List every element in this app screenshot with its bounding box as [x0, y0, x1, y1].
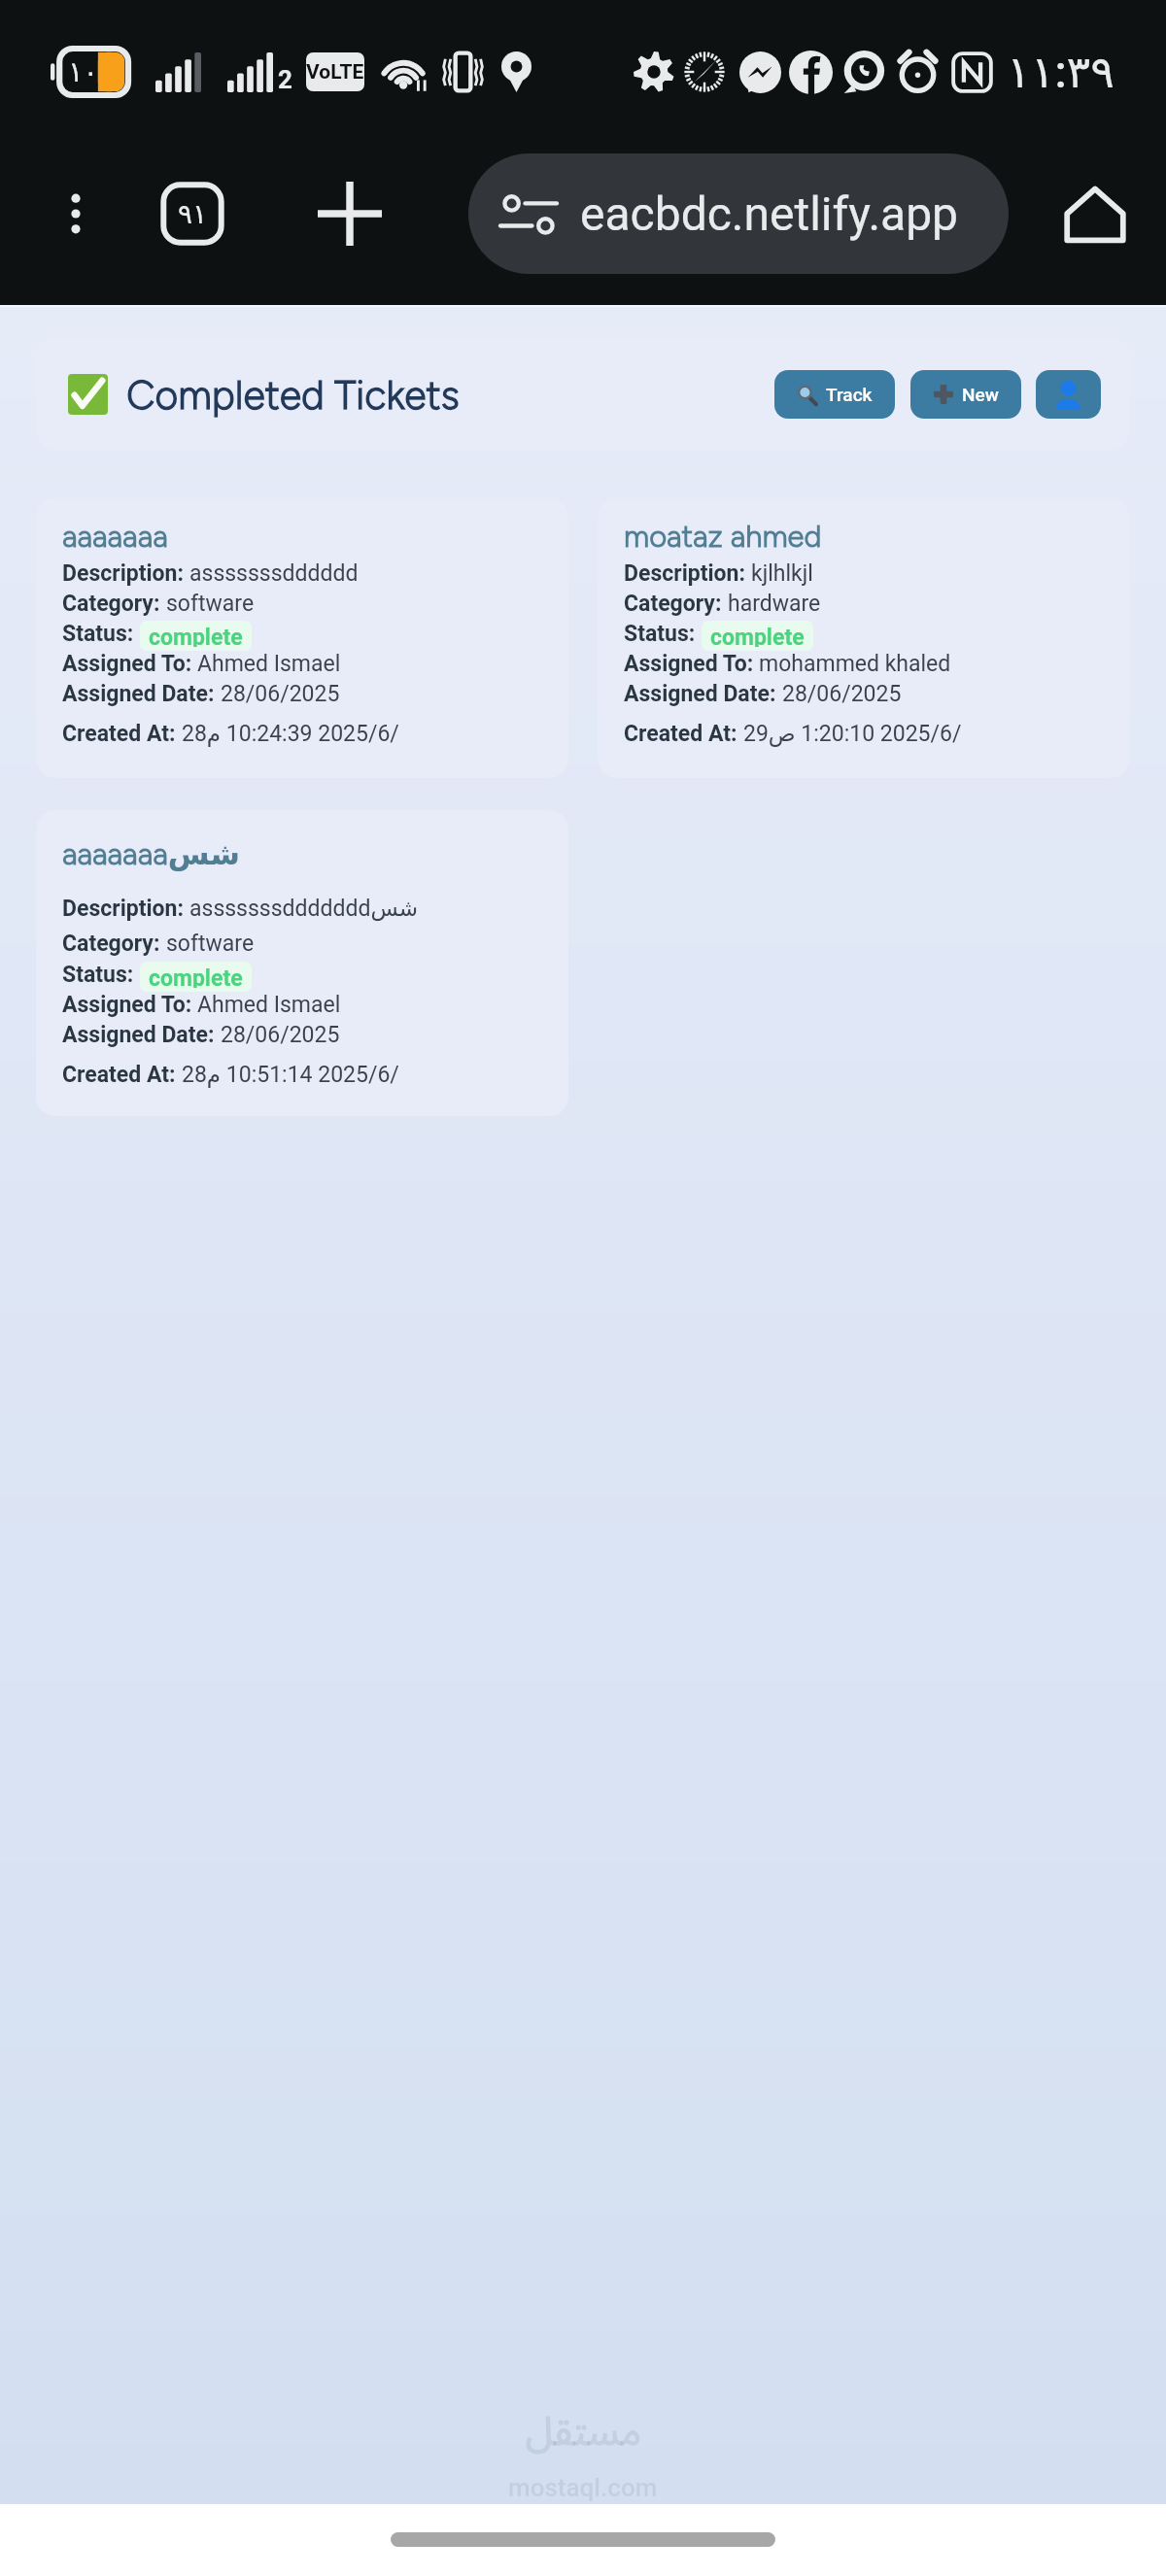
staticText: Assigned To:: [624, 651, 759, 677]
staticText: complete: [149, 966, 243, 988]
button[interactable]: More options: [35, 173, 117, 254]
staticText: Ahmed Ismael: [197, 992, 341, 1018]
staticText: Status:: [62, 962, 134, 988]
button[interactable]: aaaaaaa: [36, 498, 568, 778]
staticText: kjlhlkjl: [751, 560, 813, 587]
staticText: asssssssdddddddشس: [189, 896, 418, 922]
staticText: mostaql.com: [508, 2473, 658, 2502]
staticText: Status:: [62, 621, 134, 647]
button[interactable]: Track: [774, 370, 895, 419]
staticText: asssssssdddddd: [189, 560, 359, 587]
staticText: 29ص‎ 1:20:10 2025/6/: [743, 721, 962, 747]
staticText: New: [962, 384, 999, 405]
button[interactable]: eacbdc.netlify.app: [468, 153, 1009, 274]
staticText: Created At:: [62, 1062, 182, 1088]
staticText: VoLTE: [306, 60, 364, 85]
staticText: 28/06/2025: [782, 681, 902, 707]
staticText: mohammed khaled: [759, 651, 951, 677]
staticText: مستقل: [526, 2391, 641, 2473]
staticText: Assigned Date:: [62, 681, 221, 707]
staticText: Ahmed Ismael: [197, 651, 341, 677]
staticText: Status:: [624, 621, 696, 647]
staticText: Track: [826, 384, 873, 405]
staticText: Created At:: [62, 721, 182, 747]
staticText: 28/06/2025: [221, 1022, 340, 1048]
button[interactable]: New: [910, 370, 1021, 419]
button[interactable]: New tab: [311, 175, 389, 253]
staticText: Category:: [62, 931, 166, 957]
staticText: ٩١: [178, 198, 208, 230]
staticText: Category:: [624, 591, 728, 617]
staticText: hardware: [728, 591, 821, 617]
staticText: 28م‎ 10:24:39 2025/6/: [182, 721, 399, 747]
staticText: aaaaaaa: [62, 519, 168, 555]
staticText: 28/06/2025: [221, 681, 340, 707]
staticText: Description:: [62, 896, 189, 922]
staticText: software: [166, 931, 255, 957]
button[interactable]: Tabs: [154, 175, 231, 253]
staticText: moataz ahmed: [624, 519, 822, 555]
button[interactable]: moataz ahmed: [598, 498, 1130, 778]
staticText: Assigned Date:: [624, 681, 782, 707]
staticText: Created At:: [624, 721, 743, 747]
staticText: Category:: [62, 591, 166, 617]
staticText: complete: [710, 625, 805, 647]
staticText: Assigned To:: [62, 651, 197, 677]
staticText: Assigned Date:: [62, 1022, 221, 1048]
staticText: ١٠: [68, 55, 99, 88]
staticText: 2: [278, 65, 292, 94]
staticText: 28م‎ 10:51:14 2025/6/: [182, 1062, 399, 1088]
staticText: Assigned To:: [62, 992, 197, 1018]
staticText: Completed Tickets: [126, 371, 460, 419]
button[interactable]: Profile: [1036, 370, 1101, 419]
button[interactable]: Home: [1052, 171, 1138, 256]
staticText: ١١:٣٩: [1007, 46, 1115, 98]
button[interactable]: aaaaaaaشس: [36, 810, 568, 1116]
staticText: eacbdc.netlify.app: [580, 186, 959, 241]
staticText: aaaaaaaشس: [62, 836, 241, 872]
staticText: software: [166, 591, 255, 617]
staticText: complete: [149, 625, 243, 647]
staticText: Description:: [624, 560, 751, 587]
staticText: Description:: [62, 560, 189, 587]
